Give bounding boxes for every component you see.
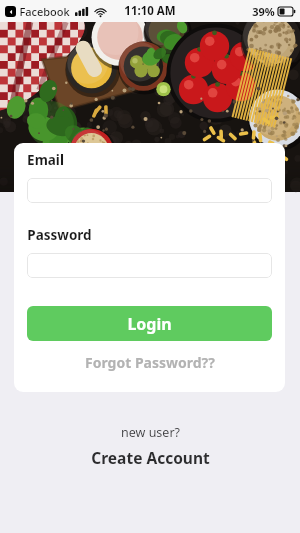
staticText: Facebook	[19, 4, 70, 19]
button[interactable]: Login	[27, 306, 272, 341]
staticText: new user?	[121, 424, 180, 441]
staticText: 39%	[252, 4, 275, 19]
staticText: Forgot Password??	[85, 353, 215, 372]
staticText: 11:10 AM	[124, 3, 176, 19]
button[interactable]	[27, 253, 272, 278]
staticText: Email	[27, 151, 64, 169]
button[interactable]: Back to Facebook	[5, 6, 16, 17]
button[interactable]: Forgot Password??	[27, 351, 272, 373]
button[interactable]: new user?	[0, 424, 300, 468]
staticText: Login	[127, 313, 172, 335]
staticText: Password	[27, 226, 92, 244]
button[interactable]	[27, 178, 272, 203]
staticText: Create Account	[91, 447, 210, 468]
